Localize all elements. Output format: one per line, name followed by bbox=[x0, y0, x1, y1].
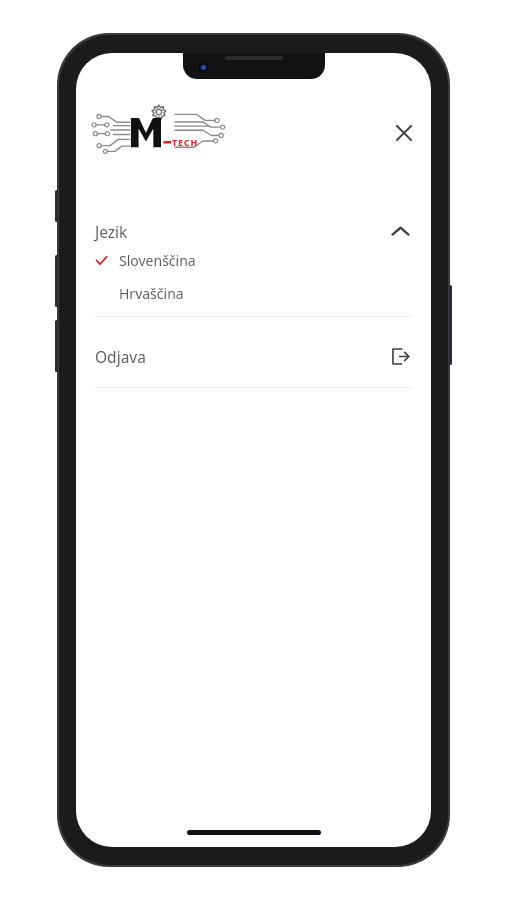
staticText: Jezik bbox=[95, 221, 128, 242]
staticText: Odjava bbox=[95, 346, 146, 367]
button[interactable]: Jezik bbox=[90, 211, 417, 251]
button[interactable]: Hrvaščina bbox=[90, 278, 417, 308]
staticText: Hrvaščina bbox=[119, 284, 184, 303]
button[interactable]: Close bbox=[382, 111, 426, 155]
button[interactable]: Odjava bbox=[90, 335, 417, 377]
staticText: TECH bbox=[172, 136, 199, 148]
staticText: Slovenščina bbox=[119, 251, 196, 270]
button[interactable]: Slovenščina bbox=[90, 245, 417, 275]
